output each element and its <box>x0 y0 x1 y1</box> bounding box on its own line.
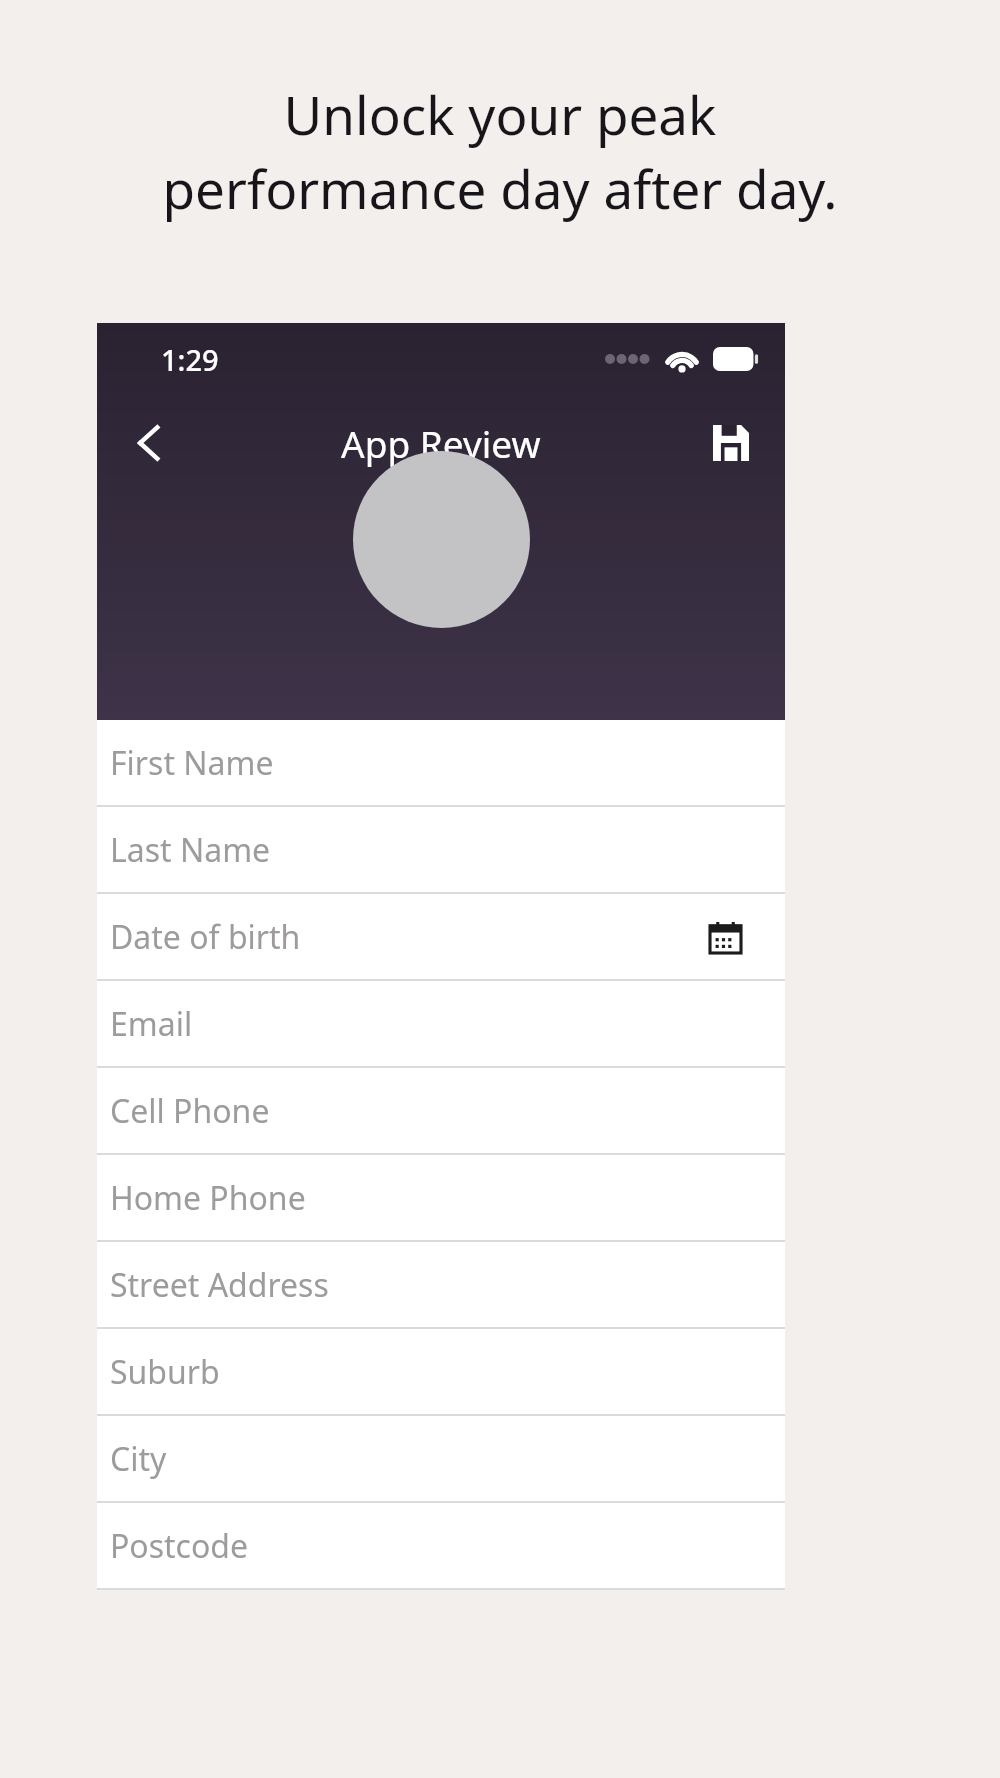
button[interactable]: Email <box>97 981 785 1068</box>
button[interactable]: Suburb <box>97 1329 785 1416</box>
button[interactable]: City <box>97 1416 785 1503</box>
button[interactable]: Back <box>111 405 187 481</box>
button[interactable]: Postcode <box>97 1503 785 1590</box>
button[interactable]: Home Phone <box>97 1155 785 1242</box>
staticText: City <box>110 1437 167 1481</box>
button[interactable]: First Name <box>97 720 785 807</box>
staticText: Email <box>110 1002 193 1046</box>
button[interactable]: Save <box>695 407 767 479</box>
staticText: Home Phone <box>110 1176 306 1220</box>
staticText: Date of birth <box>110 915 301 959</box>
staticText: Cell Phone <box>110 1089 270 1133</box>
staticText: Postcode <box>110 1524 249 1568</box>
staticText: Street Address <box>110 1263 329 1307</box>
button[interactable]: Last Name <box>97 807 785 894</box>
button[interactable]: Cell Phone <box>97 1068 785 1155</box>
staticText: App Review <box>341 418 541 468</box>
button[interactable]: Profile photo <box>353 451 530 628</box>
staticText: 1:29 <box>161 340 219 379</box>
button[interactable]: Pick date <box>705 917 745 957</box>
staticText: Unlock your peak performance day after d… <box>40 78 960 225</box>
staticText: Suburb <box>110 1350 220 1394</box>
button[interactable]: Date of birth <box>97 894 785 981</box>
button[interactable]: Street Address <box>97 1242 785 1329</box>
staticText: First Name <box>110 741 274 785</box>
staticText: Last Name <box>110 828 271 872</box>
